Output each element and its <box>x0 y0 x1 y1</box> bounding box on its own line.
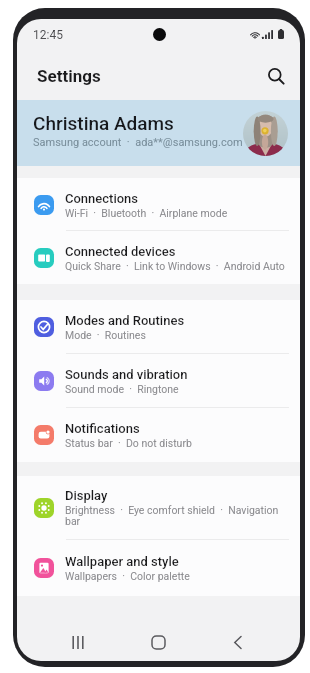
button[interactable]: Wallpaper and style <box>17 540 300 596</box>
button[interactable]: Home <box>137 636 179 661</box>
button[interactable]: Search <box>258 58 294 94</box>
button[interactable]: Christina Adams <box>17 100 300 166</box>
staticText: Connections <box>65 191 139 206</box>
staticText: Modes and Routines <box>65 313 185 328</box>
staticText: Connected devices <box>65 244 176 259</box>
staticText: Mode · Routines <box>65 329 146 341</box>
staticText: 12:45 <box>33 28 63 42</box>
staticText: Samsung account · ada**@samsung.com <box>33 136 243 149</box>
staticText: Quick Share · Link to Windows · Android … <box>65 260 285 272</box>
staticText: Sound mode · Ringtone <box>65 383 179 395</box>
button[interactable]: Modes and Routines <box>17 300 300 354</box>
staticText: Notifications <box>65 421 140 436</box>
button[interactable]: Connected devices <box>17 231 300 284</box>
button[interactable]: Back <box>217 636 259 661</box>
button[interactable]: Notifications <box>17 408 300 462</box>
staticText: Status bar · Do not disturb <box>65 437 192 449</box>
staticText: Christina Adams <box>33 112 174 134</box>
staticText: Settings <box>37 66 101 86</box>
staticText: Brightness · Eye comfort shield · Naviga… <box>65 504 295 528</box>
button[interactable]: Connections <box>17 178 300 231</box>
staticText: Sounds and vibration <box>65 367 188 382</box>
staticText: Display <box>65 488 108 503</box>
button[interactable]: Display <box>17 476 300 540</box>
staticText: Wi-Fi · Bluetooth · Airplane mode <box>65 207 228 219</box>
button[interactable]: Sounds and vibration <box>17 354 300 408</box>
staticText: Wallpaper and style <box>65 554 179 569</box>
staticText: Wallpapers · Color palette <box>65 570 190 582</box>
button[interactable]: Recents <box>57 636 99 661</box>
